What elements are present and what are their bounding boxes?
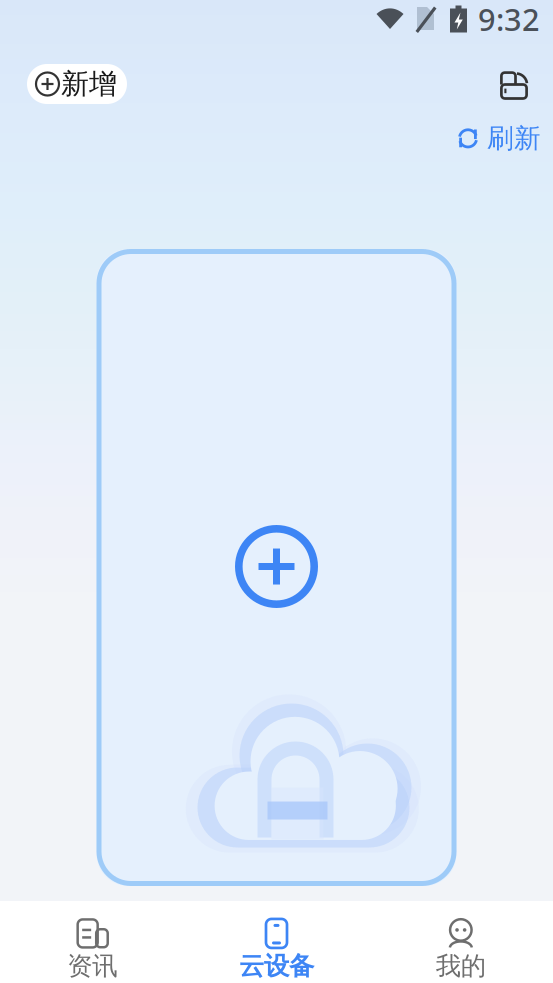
staticText: 9:32	[478, 0, 540, 39]
button[interactable]: Customer service	[492, 62, 536, 106]
staticText: 资讯	[67, 950, 117, 981]
button[interactable]: 新增	[27, 64, 127, 104]
button[interactable]: 云设备	[184, 897, 369, 983]
button[interactable]: Add device	[235, 525, 318, 608]
button[interactable]: 资讯	[0, 897, 184, 983]
staticText: 云设备	[239, 950, 314, 981]
button[interactable]: 我的	[369, 897, 553, 983]
staticText: 新增	[61, 67, 117, 101]
button[interactable]: 刷新	[456, 117, 541, 160]
staticText: 刷新	[487, 122, 541, 155]
staticText: 我的	[436, 950, 486, 981]
